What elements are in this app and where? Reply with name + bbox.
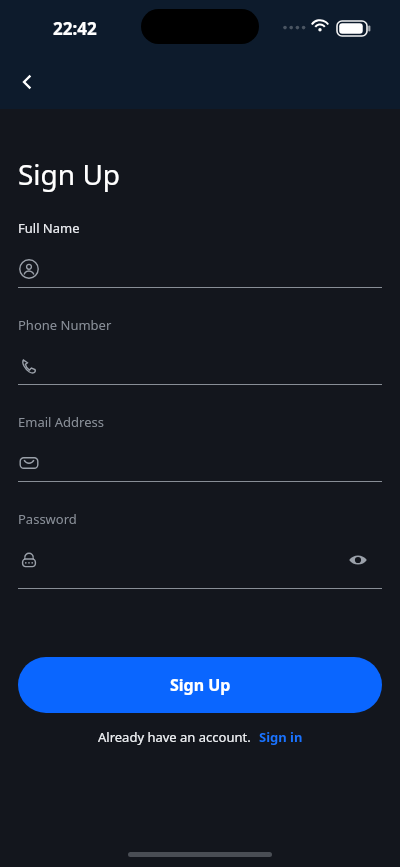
staticText: Sign in: [259, 728, 303, 746]
staticText: Phone Number: [18, 316, 112, 334]
button[interactable]: Password: [0, 546, 400, 574]
staticText: Sign Up: [170, 674, 231, 696]
staticText: Sign Up: [18, 155, 121, 193]
other: Phone number: [19, 356, 39, 376]
staticText: Already have an account.: [98, 728, 251, 746]
button[interactable]: Sign Up: [18, 657, 382, 713]
button[interactable]: Phone number: [0, 352, 400, 380]
other: Password: [19, 550, 39, 570]
other: Full name: [19, 259, 39, 279]
staticText: Email Address: [18, 413, 104, 431]
button[interactable]: Full name: [0, 255, 400, 283]
button[interactable]: Sign in: [259, 728, 303, 746]
other: Email address: [19, 453, 39, 473]
button[interactable]: Back: [8, 62, 48, 102]
staticText: Full Name: [18, 219, 80, 237]
staticText: 22:42: [53, 17, 97, 40]
button[interactable]: Show password: [346, 548, 370, 572]
button[interactable]: Email address: [0, 449, 400, 477]
staticText: Password: [18, 510, 77, 528]
